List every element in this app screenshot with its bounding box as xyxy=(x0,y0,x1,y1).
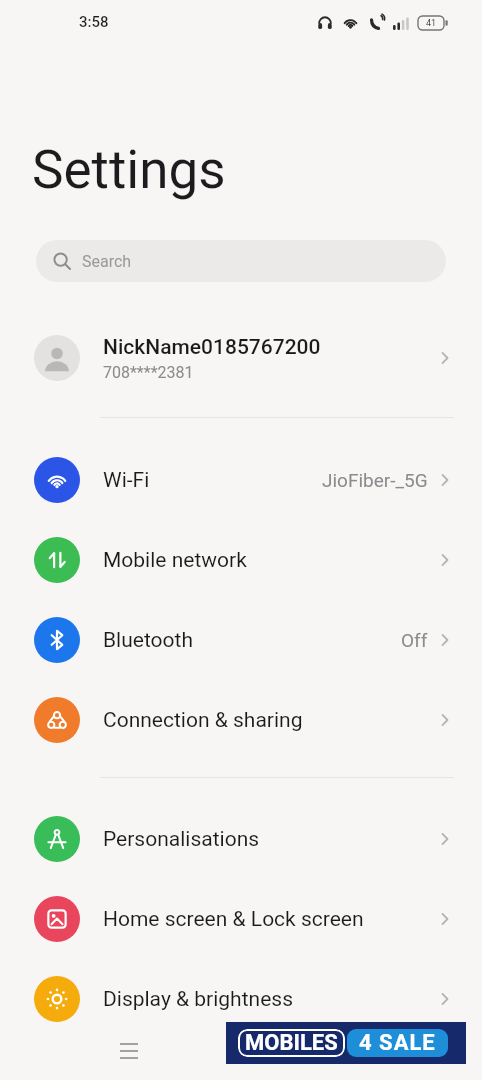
staticText: Wi-Fi xyxy=(103,468,150,493)
staticText: 4 SALE xyxy=(359,1030,436,1056)
button[interactable]: Bluetooth xyxy=(0,600,482,680)
staticText: 41 xyxy=(426,18,437,29)
staticText: Connection & sharing xyxy=(103,708,303,733)
staticText: JioFiber-_5G xyxy=(322,469,428,491)
button[interactable]: NickName0185767200 xyxy=(0,323,482,393)
staticText: MOBILES xyxy=(245,1030,338,1056)
button[interactable]: Mobile network xyxy=(0,520,482,600)
staticText: Personalisations xyxy=(103,827,260,852)
staticText: 3:58 xyxy=(79,13,109,31)
button[interactable]: Connection & sharing xyxy=(0,680,482,760)
button[interactable]: Home screen & Lock screen xyxy=(0,879,482,959)
staticText: Display & brightness xyxy=(103,987,293,1012)
staticText: 708****2381 xyxy=(103,363,194,382)
button[interactable]: Search xyxy=(36,240,446,282)
staticText: Off xyxy=(401,629,428,651)
button[interactable]: MOBILES xyxy=(226,1022,466,1064)
staticText: Bluetooth xyxy=(103,628,193,653)
staticText: Search xyxy=(82,252,132,271)
staticText: NickName0185767200 xyxy=(103,335,321,360)
staticText: Settings xyxy=(32,139,226,201)
button[interactable]: Wi-Fi xyxy=(0,440,482,520)
staticText: Home screen & Lock screen xyxy=(103,907,364,932)
button[interactable]: Personalisations xyxy=(0,799,482,879)
button[interactable]: Display & brightness xyxy=(0,959,482,1039)
staticText: Mobile network xyxy=(103,548,247,573)
